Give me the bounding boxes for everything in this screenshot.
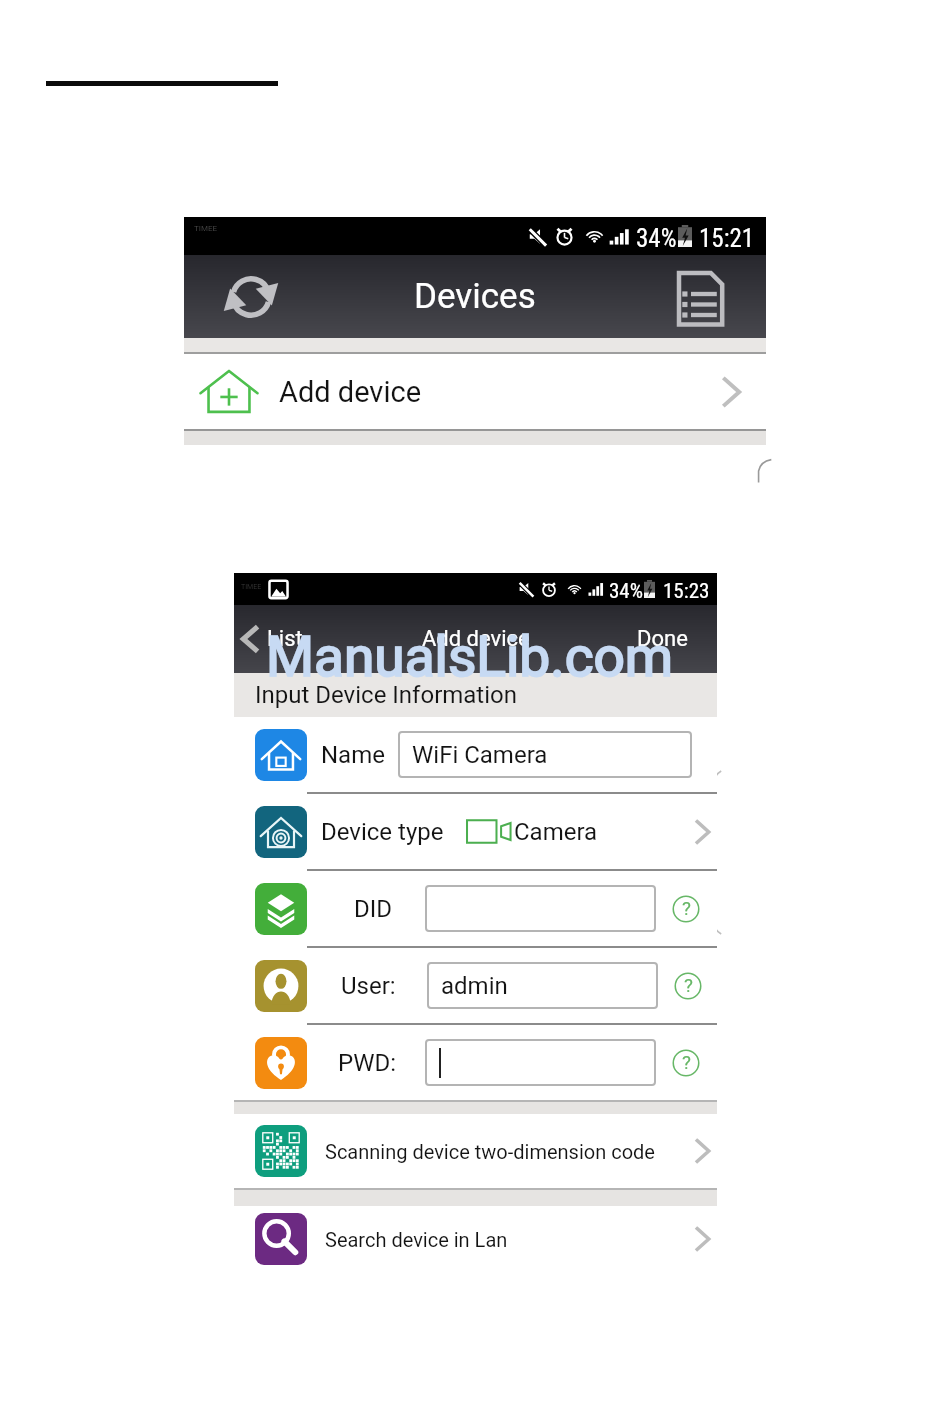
- button[interactable]: Refresh: [222, 268, 280, 326]
- staticText: User:: [341, 972, 396, 1000]
- button[interactable]: Search device in Lan: [234, 1206, 717, 1272]
- staticText: DID: [354, 895, 393, 923]
- staticText: Camera: [514, 818, 598, 846]
- button[interactable]: Scanning device two-dimension code: [234, 1114, 717, 1188]
- staticText: 34%: [609, 579, 644, 604]
- button[interactable]: User:: [234, 948, 717, 1023]
- staticText: Add device: [279, 375, 422, 409]
- staticText: Scanning device two-dimension code: [325, 1140, 655, 1163]
- staticText: WiFi Camera: [412, 741, 548, 769]
- staticText: Name: [321, 741, 385, 769]
- staticText: TIMEE: [194, 224, 218, 233]
- staticText: Search device in Lan: [325, 1228, 508, 1251]
- staticText: Devices: [414, 276, 536, 317]
- button[interactable]: PWD:: [234, 1025, 717, 1100]
- staticText: Input Device Information: [255, 681, 517, 709]
- button[interactable]: Help: [674, 972, 702, 1000]
- button[interactable]: Help: [672, 1049, 700, 1077]
- staticText: List: [267, 626, 303, 652]
- staticText: ?: [682, 1051, 691, 1073]
- staticText: TIMEE: [241, 583, 262, 591]
- button[interactable]: Device type: [234, 794, 717, 869]
- button[interactable]: Name: [234, 717, 717, 792]
- staticText: Done: [637, 626, 688, 652]
- button[interactable]: Done: [619, 605, 717, 673]
- staticText: ManualsLib.com: [266, 625, 674, 689]
- staticText: ?: [682, 897, 691, 919]
- staticText: PWD:: [338, 1049, 396, 1077]
- staticText: 15:23: [663, 579, 710, 604]
- staticText: Add device: [422, 626, 530, 652]
- staticText: 15:21: [699, 224, 755, 253]
- button[interactable]: Help: [672, 895, 700, 923]
- staticText: 34%: [636, 224, 677, 253]
- staticText: ?: [684, 974, 693, 996]
- staticText: admin: [441, 972, 508, 1000]
- button[interactable]: Add device: [184, 354, 766, 429]
- button[interactable]: Device list: [670, 267, 730, 327]
- staticText: Device type: [321, 818, 444, 846]
- button[interactable]: List: [234, 605, 313, 673]
- button[interactable]: DID: [234, 871, 717, 946]
